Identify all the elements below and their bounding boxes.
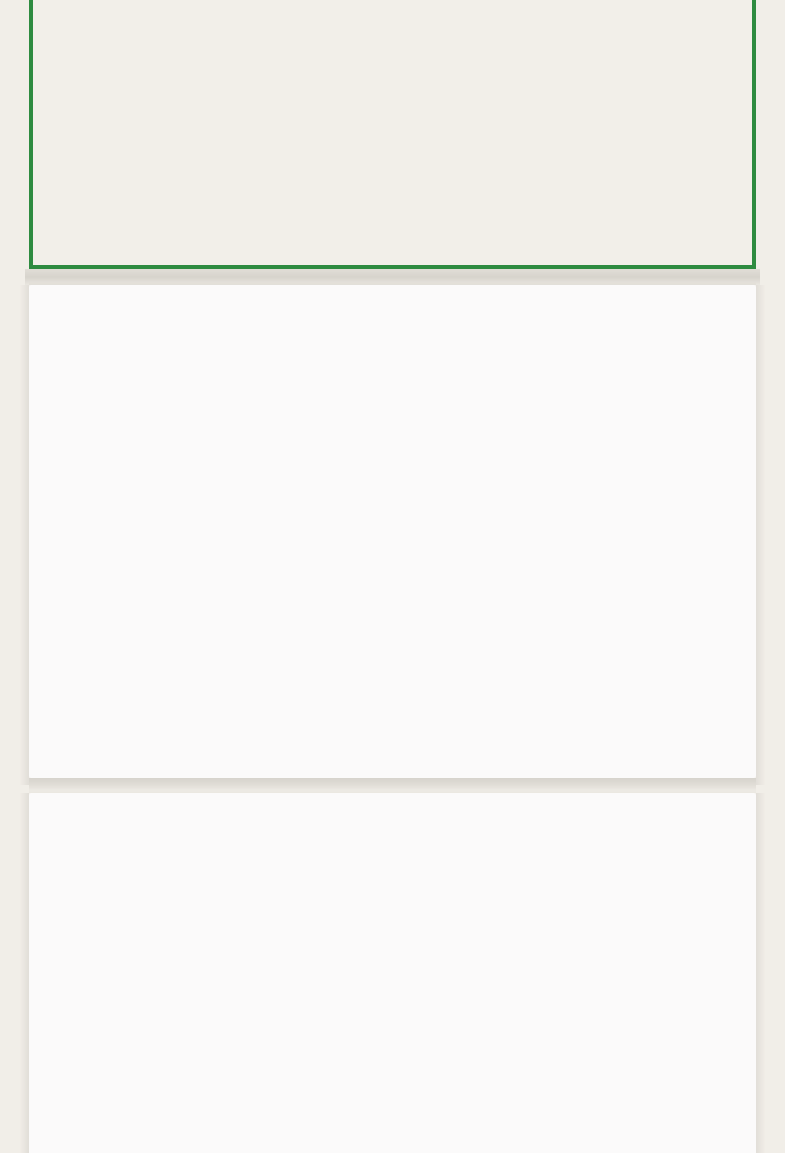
button[interactable]: Highlighted panel xyxy=(29,0,756,269)
